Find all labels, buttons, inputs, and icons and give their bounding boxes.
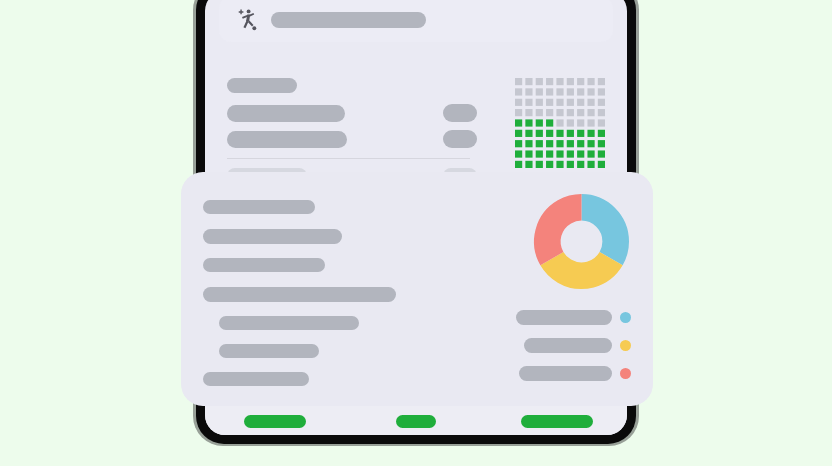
button[interactable] <box>219 0 613 42</box>
button[interactable] <box>181 172 653 406</box>
button[interactable]: Stats <box>205 373 345 435</box>
button[interactable]: Photos <box>345 373 486 435</box>
button[interactable]: Map <box>486 373 627 435</box>
